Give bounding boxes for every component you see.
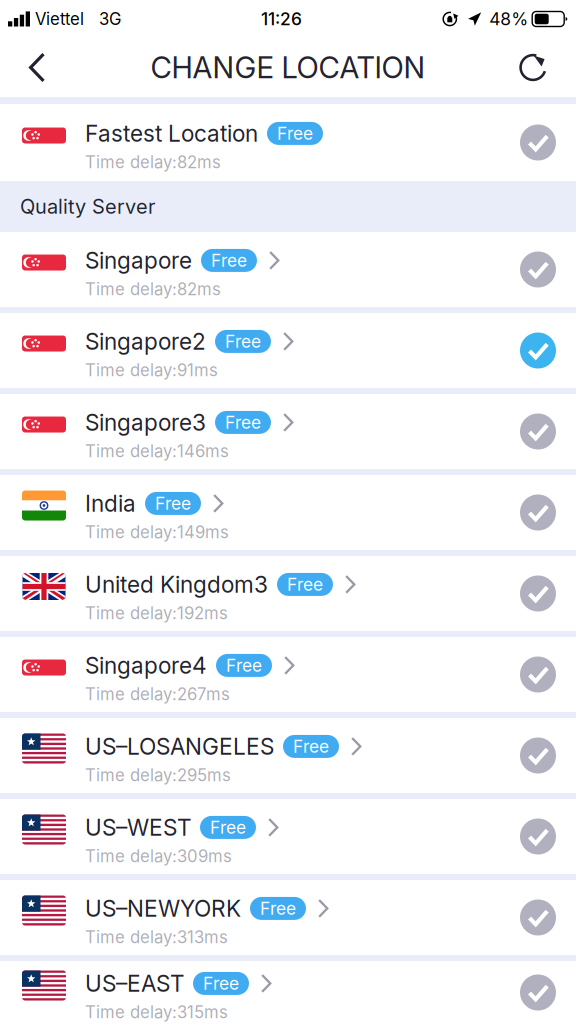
staticText: United Kingdom3 — [85, 571, 268, 598]
staticText: Time delay:91ms — [85, 360, 218, 380]
button[interactable]: Singapore4 — [0, 637, 576, 712]
staticText: Time delay:309ms — [85, 846, 232, 866]
staticText: 48% — [489, 8, 528, 29]
staticText: Time delay:82ms — [85, 152, 221, 172]
staticText: Free — [293, 736, 329, 757]
button[interactable]: Fastest Location — [0, 104, 576, 181]
staticText: 3G — [99, 9, 121, 29]
button[interactable]: Back — [16, 39, 58, 95]
staticText: Singapore — [85, 247, 192, 274]
staticText: Time delay:192ms — [85, 603, 228, 623]
staticText: US–NEWYORK — [85, 895, 241, 922]
staticText: Quality Server — [20, 194, 155, 219]
staticText: Time delay:295ms — [85, 765, 231, 785]
staticText: India — [85, 490, 136, 517]
staticText: Free — [203, 973, 239, 994]
button[interactable]: Singapore — [0, 232, 576, 307]
button[interactable]: US–EAST — [0, 961, 576, 1024]
staticText: Free — [225, 412, 261, 433]
button[interactable]: India — [0, 475, 576, 550]
staticText: Free — [226, 655, 262, 676]
staticText: Singapore2 — [85, 328, 206, 355]
staticText: Singapore4 — [85, 652, 207, 679]
staticText: Singapore3 — [85, 409, 206, 436]
staticText: Free — [225, 331, 261, 352]
button[interactable]: Refresh — [506, 39, 560, 95]
staticText: Free — [260, 898, 296, 919]
staticText: Free — [211, 250, 247, 271]
staticText: Free — [287, 574, 323, 595]
staticText: 11:26 — [261, 8, 302, 29]
button[interactable]: US–WEST — [0, 799, 576, 874]
button[interactable]: US–LOSANGELES — [0, 718, 576, 793]
staticText: Time delay:82ms — [85, 279, 221, 299]
staticText: Viettel — [35, 9, 84, 29]
staticText: Time delay:149ms — [85, 522, 229, 542]
staticText: Time delay:267ms — [85, 684, 230, 704]
button[interactable]: United Kingdom3 — [0, 556, 576, 631]
staticText: Fastest Location — [85, 120, 258, 147]
staticText: Time delay:315ms — [85, 1002, 228, 1022]
button[interactable]: US–NEWYORK — [0, 880, 576, 955]
button[interactable]: Singapore2 — [0, 313, 576, 388]
staticText: Free — [210, 817, 246, 838]
staticText: Free — [277, 123, 313, 144]
staticText: US–WEST — [85, 814, 191, 841]
staticText: CHANGE LOCATION — [150, 50, 425, 85]
staticText: Time delay:313ms — [85, 927, 228, 947]
staticText: Time delay:146ms — [85, 441, 229, 461]
staticText: US–EAST — [85, 970, 184, 997]
staticText: US–LOSANGELES — [85, 733, 274, 760]
button[interactable]: Singapore3 — [0, 394, 576, 469]
staticText: Free — [155, 493, 191, 514]
